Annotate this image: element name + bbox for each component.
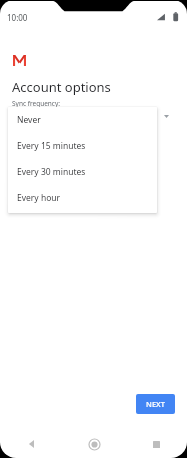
staticText: when connected to WiFi <box>30 202 115 212</box>
staticText: NEXT <box>146 399 165 409</box>
staticText: Every 15 minutes <box>17 140 86 152</box>
staticText: Every hour <box>17 192 61 204</box>
button[interactable]: NEXT <box>136 394 175 414</box>
button[interactable]: Every 30 minutes <box>8 159 157 185</box>
staticText: Sync frequency: <box>12 99 61 108</box>
button[interactable]: Recent apps <box>125 430 187 458</box>
button[interactable]: Home <box>63 430 125 458</box>
staticText: Download attachments <box>27 198 109 208</box>
staticText: 10:00 <box>7 12 28 23</box>
staticText: Every 30 minutes <box>17 166 86 178</box>
button[interactable]: Every hour <box>8 185 157 211</box>
button[interactable]: Open sync frequency menu <box>160 110 172 122</box>
staticText: Account options <box>12 78 111 96</box>
button[interactable]: Never <box>8 107 157 133</box>
button[interactable]: Back <box>0 430 63 458</box>
button[interactable]: Download attachments <box>0 192 187 214</box>
staticText: Never <box>17 114 41 126</box>
button[interactable]: Every 15 minutes <box>8 133 157 159</box>
